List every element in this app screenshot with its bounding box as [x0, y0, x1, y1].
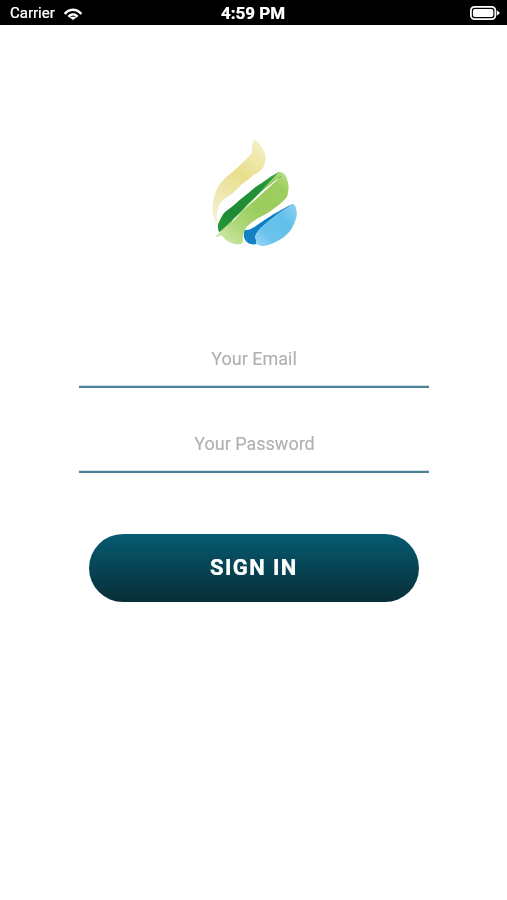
staticText: Your Email	[211, 348, 297, 369]
staticText: Your Password	[194, 433, 315, 454]
button[interactable]: Your Email	[77, 341, 431, 388]
other: Wi-Fi signal	[63, 6, 83, 20]
staticText: 4:59 PM	[221, 3, 286, 23]
staticText: Carrier	[10, 4, 55, 22]
other: Battery	[470, 6, 500, 20]
button[interactable]: Your Password	[77, 426, 431, 473]
button[interactable]: SIGN IN	[89, 534, 419, 602]
staticText: SIGN IN	[210, 555, 298, 581]
